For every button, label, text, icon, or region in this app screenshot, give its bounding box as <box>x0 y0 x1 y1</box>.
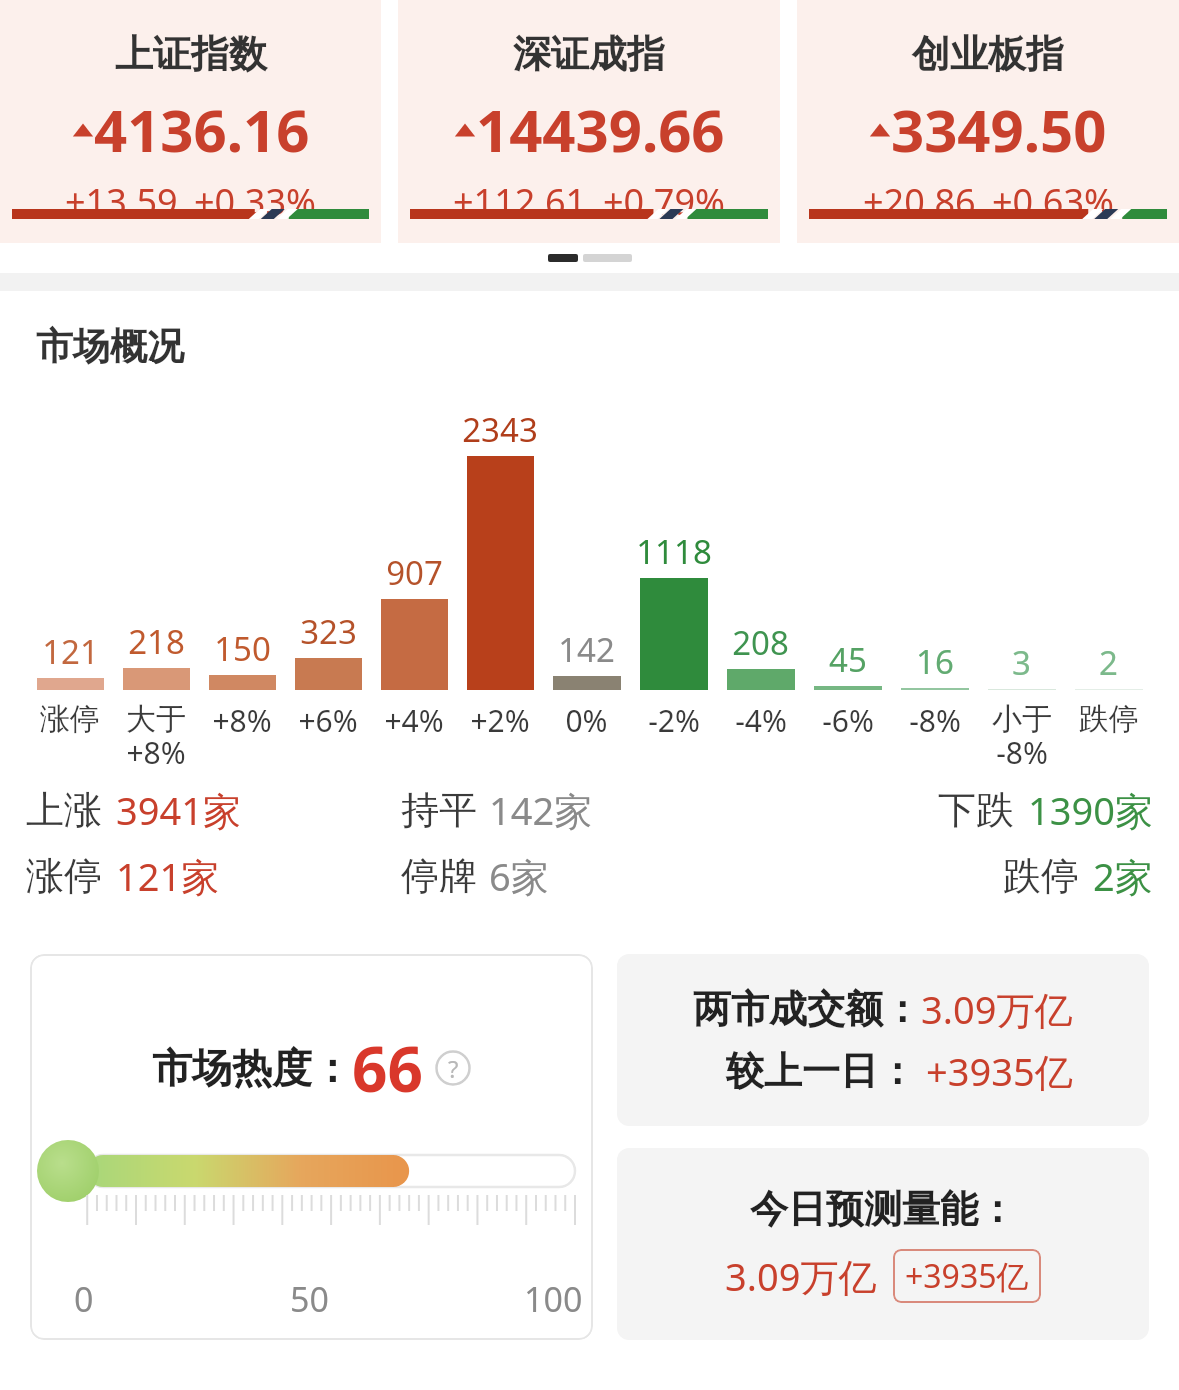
staticText: 小于 -8% <box>992 700 1052 772</box>
staticText: 323 <box>300 609 357 654</box>
button[interactable]: 深证成指 <box>398 0 780 243</box>
staticText: +3935亿 <box>926 1045 1073 1097</box>
staticText: 150 <box>214 626 271 671</box>
staticText: 4136.16 <box>94 90 310 169</box>
staticText: +20.86 <box>863 177 976 226</box>
staticText: 持平 <box>401 786 477 834</box>
button[interactable]: 创业板指 <box>797 0 1179 243</box>
staticText: +3935亿 <box>905 1254 1029 1298</box>
staticText: +13.59 <box>65 177 178 226</box>
staticText: 较上一日： <box>726 1047 916 1095</box>
staticText: 深证成指 <box>513 30 665 78</box>
staticText: 0% <box>565 700 608 741</box>
staticText: 907 <box>386 550 443 595</box>
staticText: 16 <box>916 639 954 684</box>
staticText: 1118 <box>636 529 712 574</box>
button[interactable]: 帮助说明 <box>435 1050 471 1086</box>
staticText: 14439.66 <box>476 90 725 169</box>
staticText: 6家 <box>489 850 549 902</box>
staticText: 45 <box>829 637 867 682</box>
staticText: +0.63% <box>992 177 1114 226</box>
staticText: 142家 <box>489 784 593 836</box>
staticText: 上涨 <box>26 786 102 834</box>
staticText: 218 <box>128 619 185 664</box>
staticText: +2% <box>470 700 530 741</box>
staticText: 两市成交额： <box>693 985 921 1033</box>
staticText: 142 <box>558 627 615 672</box>
button[interactable]: 今日预测量能： <box>617 1148 1149 1340</box>
staticText: 涨停 <box>26 852 102 900</box>
staticText: 上证指数 <box>115 30 267 78</box>
staticText: 停牌 <box>401 852 477 900</box>
staticText: 大于 +8% <box>126 700 186 772</box>
staticText: 创业板指 <box>912 30 1064 78</box>
staticText: -4% <box>735 700 787 741</box>
button[interactable]: 两市成交额： <box>617 954 1149 1126</box>
staticText: 50 <box>290 1276 329 1322</box>
staticText: 2家 <box>1093 850 1153 902</box>
staticText: +112.61 <box>453 177 587 226</box>
staticText: 3941家 <box>116 784 241 836</box>
staticText: 0 <box>74 1276 94 1322</box>
staticText: +8% <box>212 700 272 741</box>
staticText: 跌停 <box>1079 700 1139 738</box>
staticText: 2343 <box>462 407 538 452</box>
staticText: 市场概况 <box>36 323 184 370</box>
staticText: 66 <box>352 1026 423 1110</box>
staticText: 3 <box>1012 640 1031 685</box>
staticText: -2% <box>648 700 700 741</box>
staticText: +6% <box>298 700 358 741</box>
staticText: -6% <box>822 700 874 741</box>
staticText: +4% <box>384 700 444 741</box>
staticText: +0.33% <box>194 177 316 226</box>
staticText: 3.09万亿 <box>725 1250 877 1302</box>
button[interactable]: 市场热度： <box>30 954 593 1340</box>
button[interactable]: 上证指数 <box>0 0 381 243</box>
staticText: -8% <box>909 700 961 741</box>
staticText: ? <box>448 1052 459 1085</box>
staticText: 3.09万亿 <box>921 983 1073 1035</box>
staticText: 下跌 <box>938 786 1014 834</box>
staticText: 涨停 <box>40 700 100 738</box>
staticText: 跌停 <box>1003 852 1079 900</box>
staticText: 市场热度： <box>152 1043 352 1093</box>
staticText: 今日预测量能： <box>750 1185 1016 1233</box>
staticText: 121家 <box>116 850 220 902</box>
staticText: 2 <box>1099 640 1118 685</box>
staticText: 208 <box>732 620 789 665</box>
staticText: 121 <box>42 629 99 674</box>
staticText: 3349.50 <box>891 90 1107 169</box>
staticText: +0.79% <box>603 177 725 226</box>
staticText: 100 <box>524 1276 583 1322</box>
staticText: 1390家 <box>1028 784 1153 836</box>
